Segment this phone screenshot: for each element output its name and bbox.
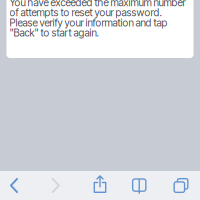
button[interactable]: Back	[0, 171, 28, 200]
staticText: Please verify your information and tap	[9, 18, 167, 28]
button[interactable]: Share	[83, 171, 111, 200]
button[interactable]: Forward	[42, 171, 70, 200]
button[interactable]: Tabs	[167, 171, 195, 200]
staticText: You have exceeded the maximum number	[9, 0, 185, 8]
staticText: "Back" to start again.	[9, 28, 98, 38]
button[interactable]: Bookmarks	[125, 171, 153, 200]
staticText: of attempts to reset your password.	[9, 8, 161, 18]
